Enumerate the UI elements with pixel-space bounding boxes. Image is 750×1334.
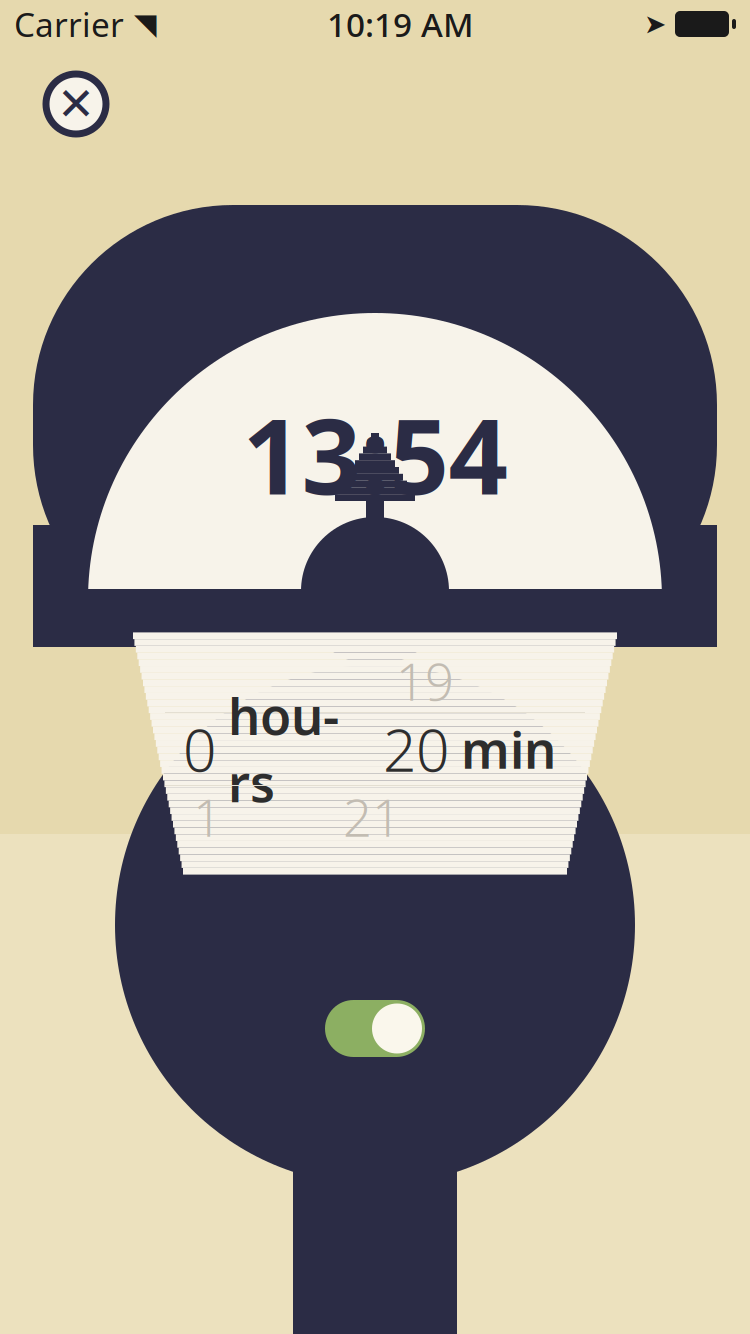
staticText: min: [461, 715, 556, 783]
staticText: 0: [183, 710, 216, 788]
staticText: Carrier: [14, 2, 124, 46]
staticText: ◥: [134, 7, 157, 41]
staticText: 1: [193, 783, 222, 851]
staticText: 19: [396, 647, 454, 715]
button[interactable]: Close: [40, 68, 112, 140]
staticText: 13:54: [242, 385, 507, 523]
staticText: 10:19 AM: [327, 2, 474, 46]
staticText: ➤: [644, 9, 666, 39]
button[interactable]: Parking timer on: [325, 1000, 425, 1057]
staticText: 20: [383, 710, 449, 788]
staticText: hours: [228, 682, 339, 816]
staticText: 21: [343, 783, 401, 851]
staticText: ✕: [57, 78, 95, 130]
